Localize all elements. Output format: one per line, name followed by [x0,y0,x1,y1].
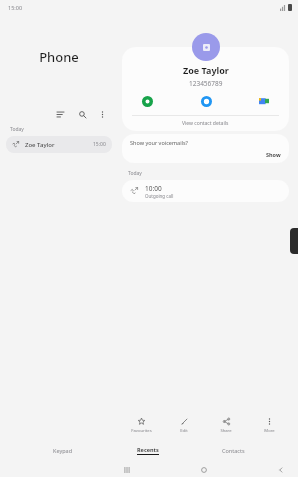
staticText: 10:00 [145,184,162,193]
staticText: Outgoing call [145,193,174,199]
button[interactable]: Edit [164,415,204,436]
staticText: Edit [180,428,188,434]
staticText: Recents [137,446,159,453]
staticText: View contact details [182,120,229,127]
button[interactable]: Video call [257,94,271,108]
button[interactable]: Contacts [212,445,255,456]
staticText: 15:00 [8,4,23,11]
button[interactable]: Edge panel [290,228,298,254]
button[interactable]: Recent apps [120,463,134,477]
staticText: Show your voicemails? [130,139,188,146]
button[interactable]: 10:00 [122,180,289,202]
button[interactable]: Favourites [121,415,161,436]
button[interactable]: More options [96,108,108,120]
button[interactable]: Share [206,415,246,436]
button[interactable]: Search [76,108,88,120]
button[interactable]: More [249,415,289,436]
button[interactable]: Sort [54,108,66,120]
staticText: More [264,428,275,434]
button[interactable]: Home [197,463,211,477]
staticText: Favourites [131,428,152,434]
button[interactable]: Call [140,94,154,108]
staticText: Today [128,170,142,177]
button[interactable]: Keypad [43,445,83,456]
button[interactable]: Message [199,94,213,108]
staticText: Zoe Taylor [25,141,93,149]
button[interactable]: View contact details [122,116,289,131]
button[interactable]: Back [274,463,288,477]
staticText: Contacts [222,447,245,454]
staticText: Today [10,126,24,133]
button[interactable]: Recents [127,444,169,457]
button[interactable]: Show your voicemails? [122,134,289,163]
staticText: Show [266,151,281,158]
button[interactable]: Contact photo [192,33,220,61]
staticText: Phone [0,48,118,66]
staticText: Share [220,428,232,434]
button[interactable]: Zoe Taylor [6,136,112,153]
staticText: 123456789 [189,79,223,88]
staticText: 15:00 [93,141,106,148]
staticText: Zoe Taylor [183,64,229,76]
staticText: Keypad [53,447,73,454]
